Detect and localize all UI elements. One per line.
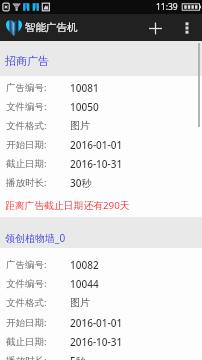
button[interactable]: 开始日期: [0, 135, 202, 154]
staticText: 2016-01-01 [70, 316, 123, 330]
staticText: 开始日期: [6, 138, 70, 151]
button[interactable]: 广告编号: [0, 255, 202, 274]
button[interactable]: 开始日期: [0, 313, 202, 332]
staticText: 2016-01-01 [70, 138, 123, 152]
staticText: 11:39 [156, 1, 178, 13]
staticText: 开始日期: [6, 316, 70, 329]
staticText: 截止日期: [6, 335, 70, 348]
button[interactable]: 招商广告 [0, 41, 202, 76]
staticText: 30秒 [70, 176, 92, 190]
button[interactable]: 文件格式: [0, 116, 202, 135]
button[interactable]: 截止日期: [0, 154, 202, 173]
button[interactable]: 距离广告截止日期还有290天 [0, 193, 202, 218]
staticText: 图片 [70, 119, 90, 132]
button[interactable]: 文件编号: [0, 97, 202, 116]
staticText: 智能广告机 [25, 21, 78, 34]
button[interactable]: 播放时长: [0, 173, 202, 192]
staticText: 10082 [70, 258, 99, 272]
staticText: 10044 [70, 277, 99, 291]
staticText: 招商广告 [5, 54, 49, 68]
staticText: 5秒 [70, 354, 86, 360]
button[interactable]: 播放时长: [0, 351, 202, 360]
button[interactable]: 截止日期: [0, 332, 202, 351]
staticText: 文件格式: [6, 296, 70, 309]
button[interactable]: More options [175, 16, 198, 39]
staticText: 2016-10-31 [70, 335, 123, 349]
staticText: 播放时长: [6, 354, 70, 360]
button[interactable]: 文件格式: [0, 293, 202, 312]
staticText: 图片 [70, 296, 90, 309]
staticText: 截止日期: [6, 157, 70, 170]
staticText: 2016-10-31 [70, 157, 123, 171]
button[interactable]: 文件编号: [0, 274, 202, 293]
staticText: 广告编号: [6, 81, 70, 94]
button[interactable]: 领创植物墙_0 [0, 217, 202, 248]
button[interactable]: Add [143, 16, 167, 40]
staticText: 文件编号: [6, 277, 70, 290]
staticText: 领创植物墙_0 [5, 231, 66, 245]
staticText: 播放时长: [6, 176, 70, 189]
staticText: 距离广告截止日期还有290天 [5, 199, 130, 212]
button[interactable]: 广告编号: [0, 78, 202, 97]
staticText: 10050 [70, 100, 99, 114]
staticText: 文件编号: [6, 100, 70, 113]
staticText: 广告编号: [6, 258, 70, 271]
staticText: 文件格式: [6, 119, 70, 132]
staticText: 10081 [70, 81, 99, 95]
